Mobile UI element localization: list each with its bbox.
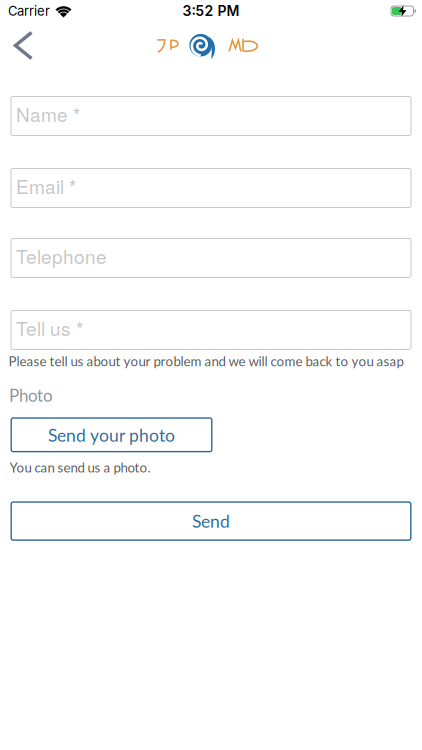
button[interactable]: Back <box>0 34 31 60</box>
staticText: Send your photo <box>48 424 175 445</box>
button[interactable]: Send <box>10 501 411 541</box>
staticText: Name * <box>16 100 80 127</box>
staticText: Photo <box>9 385 53 405</box>
button[interactable]: Send your photo <box>10 417 212 452</box>
staticText: Tell us * <box>16 314 83 341</box>
staticText: Please tell us about your problem and we… <box>8 353 403 369</box>
staticText: 3:52 PM <box>182 3 239 19</box>
staticText: Carrier <box>8 3 50 19</box>
staticText: Send <box>192 511 230 532</box>
staticText: You can send us a photo. <box>9 459 150 475</box>
staticText: Telephone <box>16 242 107 269</box>
staticText: Email * <box>16 172 76 199</box>
